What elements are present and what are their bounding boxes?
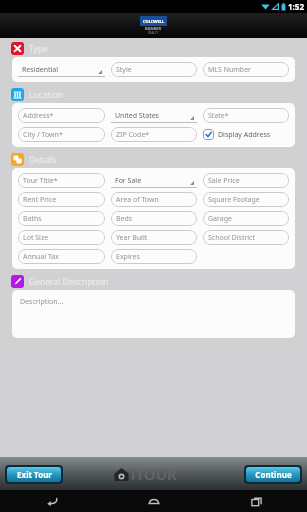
staticText: Area of Town [116, 195, 159, 205]
button[interactable]: Area of Town [111, 192, 197, 207]
other: Edit description [13, 277, 22, 286]
button[interactable]: Residential [18, 62, 105, 77]
button[interactable]: Back [0, 490, 103, 512]
staticText: Rent Price [23, 195, 57, 205]
staticText: iTOUR [131, 464, 177, 484]
button[interactable]: MLS Number [203, 62, 289, 77]
staticText: Lot Size [23, 233, 49, 243]
staticText: Description... [20, 297, 64, 307]
staticText: General Description [29, 276, 109, 288]
staticText: Tour Title* [23, 176, 58, 186]
button[interactable]: Rent Price [18, 192, 105, 207]
staticText: For Sale [115, 176, 142, 186]
staticText: BANKER [145, 26, 162, 31]
button[interactable]: Lot Size [18, 230, 105, 245]
staticText: Garage [208, 214, 232, 224]
staticText: Residential [22, 65, 59, 75]
staticText: 1:52 [288, 1, 304, 12]
staticText: Square Footage [208, 195, 260, 205]
button[interactable]: School District [203, 230, 289, 245]
staticText: City / Town* [23, 130, 63, 140]
staticText: Display Address [218, 130, 271, 140]
staticText: Sale Price [208, 176, 240, 186]
button[interactable]: Baths [18, 211, 105, 226]
staticText: Address* [23, 111, 54, 121]
staticText: ZIP Code* [116, 130, 150, 140]
staticText: Location [29, 89, 64, 101]
button[interactable]: Display Address [203, 127, 289, 142]
button[interactable]: Address* [18, 108, 105, 123]
button[interactable]: Square Footage [203, 192, 289, 207]
button[interactable]: Expires [111, 249, 197, 264]
button[interactable]: Year Built [111, 230, 197, 245]
button[interactable]: Sale Price [203, 173, 289, 188]
other: Type [13, 44, 22, 53]
staticText: MLS Number [208, 65, 252, 75]
other: Location [13, 90, 22, 99]
button[interactable]: Description... [12, 290, 295, 338]
staticText: State* [208, 111, 229, 121]
button[interactable]: Tour Title* [18, 173, 105, 188]
button[interactable]: For Sale [111, 173, 197, 188]
button[interactable]: Annual Tax [18, 249, 105, 264]
staticText: Expires [116, 252, 140, 262]
button[interactable]: Recent apps [205, 490, 307, 512]
other: Details [13, 155, 22, 164]
staticText: Details [29, 154, 57, 166]
staticText: Exit Tour [17, 469, 52, 480]
staticText: School District [208, 233, 256, 243]
staticText: Continue [255, 469, 292, 480]
button[interactable]: Exit Tour [7, 467, 61, 482]
staticText: MEDIA [177, 471, 193, 478]
staticText: REALTY [148, 31, 159, 35]
staticText: Annual Tax [23, 252, 59, 262]
staticText: United States [115, 111, 159, 121]
button[interactable]: Continue [246, 467, 300, 482]
button[interactable]: Style [111, 62, 197, 77]
staticText: Baths [23, 214, 42, 224]
button[interactable]: United States [111, 108, 197, 123]
button[interactable]: State* [203, 108, 289, 123]
button[interactable]: Home [103, 490, 205, 512]
staticText: Style [116, 65, 132, 75]
button[interactable]: Beds [111, 211, 197, 226]
staticText: Beds [116, 214, 133, 224]
staticText: Type [29, 43, 48, 55]
staticText: Year Built [116, 233, 148, 243]
staticText: COLDWELL [143, 19, 165, 24]
button[interactable]: ZIP Code* [111, 127, 197, 142]
button[interactable]: Garage [203, 211, 289, 226]
button[interactable]: City / Town* [18, 127, 105, 142]
